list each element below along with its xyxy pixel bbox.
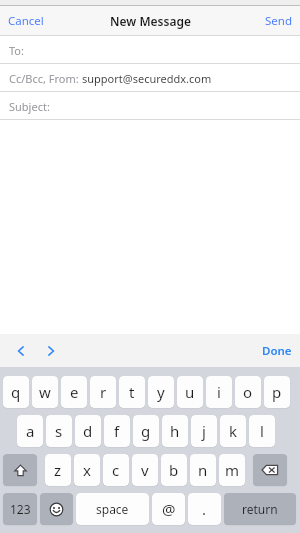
staticText: o: [243, 382, 253, 402]
staticText: Cancel: [8, 13, 44, 29]
button[interactable]: Subject:: [0, 92, 300, 120]
staticText: Done: [262, 343, 292, 359]
staticText: g: [141, 421, 151, 441]
button[interactable]: l: [249, 415, 275, 447]
button[interactable]: w: [32, 376, 58, 408]
staticText: j: [202, 421, 206, 441]
button[interactable]: space: [76, 493, 149, 525]
staticText: To:: [9, 43, 24, 58]
button[interactable]: return: [224, 493, 296, 525]
button[interactable]: z: [45, 454, 71, 486]
button[interactable]: u: [177, 376, 203, 408]
staticText: space: [96, 501, 129, 517]
button[interactable]: r: [90, 376, 116, 408]
button[interactable]: Shift: [3, 454, 37, 486]
button[interactable]: p: [264, 376, 290, 408]
button[interactable]: b: [161, 454, 187, 486]
button[interactable]: g: [133, 415, 159, 447]
staticText: @: [162, 499, 176, 519]
staticText: h: [170, 421, 180, 441]
staticText: e: [70, 382, 79, 402]
staticText: Cc/Bcc, From:: [9, 71, 79, 86]
staticText: v: [141, 460, 149, 480]
button[interactable]: j: [191, 415, 217, 447]
staticText: u: [185, 382, 195, 402]
button[interactable]: @: [152, 493, 185, 525]
button[interactable]: i: [206, 376, 232, 408]
staticText: n: [198, 460, 208, 480]
button[interactable]: Done: [262, 334, 292, 367]
staticText: c: [112, 460, 120, 480]
staticText: Send: [265, 13, 292, 29]
button[interactable]: e: [61, 376, 87, 408]
staticText: w: [39, 382, 51, 402]
button[interactable]: To:: [0, 36, 300, 64]
staticText: i: [217, 382, 221, 402]
button[interactable]: n: [190, 454, 216, 486]
button[interactable]: f: [104, 415, 130, 447]
staticText: 123: [10, 501, 31, 517]
staticText: New Message: [110, 13, 191, 29]
staticText: Subject:: [9, 99, 50, 114]
staticText: x: [83, 460, 91, 480]
staticText: l: [260, 421, 264, 441]
button[interactable]: s: [46, 415, 72, 447]
staticText: q: [11, 382, 21, 402]
button[interactable]: q: [3, 376, 29, 408]
staticText: a: [26, 421, 35, 441]
staticText: t: [129, 382, 135, 402]
button[interactable]: o: [235, 376, 261, 408]
staticText: m: [225, 460, 240, 480]
button[interactable]: Backspace: [253, 454, 287, 486]
button[interactable]: .: [188, 493, 221, 525]
staticText: f: [114, 421, 120, 441]
button[interactable]: a: [17, 415, 43, 447]
button[interactable]: Previous field: [9, 339, 33, 363]
staticText: support@secureddx.com: [82, 71, 212, 86]
staticText: return: [242, 501, 278, 517]
button[interactable]: Emoji: [40, 493, 73, 525]
button[interactable]: d: [75, 415, 101, 447]
button[interactable]: Send: [265, 6, 292, 36]
staticText: s: [55, 421, 63, 441]
button[interactable]: m: [219, 454, 245, 486]
staticText: d: [83, 421, 93, 441]
button[interactable]: 123: [3, 493, 37, 525]
button[interactable]: x: [74, 454, 100, 486]
button[interactable]: Next field: [39, 339, 63, 363]
staticText: z: [54, 460, 62, 480]
staticText: r: [100, 382, 107, 402]
button[interactable]: Cc/Bcc, From:: [0, 64, 300, 92]
staticText: p: [272, 382, 282, 402]
button[interactable]: k: [220, 415, 246, 447]
button[interactable]: h: [162, 415, 188, 447]
button[interactable]: t: [119, 376, 145, 408]
staticText: k: [229, 421, 238, 441]
staticText: .: [202, 499, 207, 519]
button[interactable]: y: [148, 376, 174, 408]
button[interactable]: Cancel: [8, 6, 44, 36]
staticText: y: [157, 382, 165, 402]
button[interactable]: v: [132, 454, 158, 486]
button[interactable]: c: [103, 454, 129, 486]
staticText: b: [169, 460, 179, 480]
